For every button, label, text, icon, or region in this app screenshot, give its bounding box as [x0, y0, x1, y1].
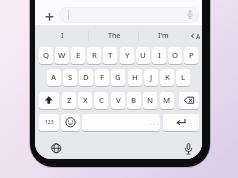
button[interactable]: 123 [39, 114, 59, 131]
button[interactable]: Y [120, 47, 134, 64]
staticText: I'm [158, 31, 169, 41]
staticText: L [181, 72, 186, 83]
button[interactable]: H [128, 69, 142, 86]
button[interactable]: J [144, 69, 158, 86]
staticText: H [132, 72, 138, 83]
staticText: C [99, 95, 104, 106]
staticText: B [131, 95, 137, 106]
button[interactable]: D [79, 69, 93, 86]
button[interactable] [59, 7, 199, 23]
staticText: W [58, 50, 66, 61]
button[interactable]: The [89, 29, 139, 42]
button[interactable]: F [95, 69, 109, 86]
staticText: A [196, 32, 201, 41]
button[interactable]: W [55, 47, 69, 64]
button[interactable]: S [63, 69, 77, 86]
button[interactable] [51, 143, 62, 154]
staticText: A [51, 72, 57, 83]
button[interactable]: O [168, 47, 182, 64]
staticText: S [68, 72, 73, 83]
staticText: X [83, 95, 88, 106]
button[interactable]: I [37, 29, 87, 42]
button[interactable]: Z [62, 92, 76, 109]
button[interactable]: Q [39, 47, 53, 64]
staticText: T [108, 50, 113, 61]
button[interactable]: K [160, 69, 174, 86]
staticText: M [163, 95, 171, 106]
button[interactable]: M [160, 92, 174, 109]
button[interactable]: I [152, 47, 166, 64]
staticText: J [150, 72, 153, 83]
staticText: E [76, 50, 81, 61]
button[interactable]: U [136, 47, 150, 64]
button[interactable]: T [103, 47, 117, 64]
button[interactable]: E [71, 47, 85, 64]
staticText: U [140, 50, 146, 61]
staticText: V [116, 95, 121, 106]
button[interactable]: B [127, 92, 141, 109]
button[interactable] [184, 143, 193, 156]
staticText: R [92, 50, 97, 61]
button[interactable]: A [190, 30, 202, 42]
button[interactable]: G [111, 69, 125, 86]
staticText: N [147, 95, 154, 106]
button[interactable]: X [78, 92, 92, 109]
staticText: 123 [45, 119, 54, 126]
button[interactable]: I'm [138, 29, 188, 42]
staticText: I [61, 31, 64, 41]
staticText: F [100, 72, 105, 83]
staticText: Z [67, 95, 72, 106]
button[interactable] [179, 92, 199, 109]
button[interactable]: N [143, 92, 157, 109]
button[interactable] [39, 92, 59, 109]
staticText: Q [43, 50, 50, 61]
button[interactable]: C [94, 92, 108, 109]
button[interactable]: L [176, 69, 190, 86]
button[interactable]: V [111, 92, 125, 109]
staticText: The [108, 31, 121, 41]
button[interactable] [44, 11, 55, 22]
staticText: K [165, 72, 170, 83]
button[interactable] [61, 114, 80, 131]
button[interactable]: R [87, 47, 101, 64]
staticText: I [158, 50, 161, 61]
staticText: Y [125, 50, 130, 61]
staticText: D [83, 72, 89, 83]
button[interactable]: P [184, 47, 198, 64]
staticText: P [189, 50, 194, 61]
button[interactable]: A [47, 69, 61, 86]
staticText: G [115, 72, 121, 83]
staticText: O [172, 50, 179, 61]
button[interactable] [163, 114, 199, 131]
